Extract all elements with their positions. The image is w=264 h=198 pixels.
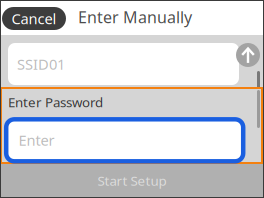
staticText: Enter Password <box>8 93 103 111</box>
staticText: Enter Manually <box>78 6 192 28</box>
button[interactable]: Enter Manually <box>78 8 198 26</box>
staticText: SSID01 <box>17 54 65 74</box>
staticText: Cancel <box>11 9 56 28</box>
staticText: Enter <box>18 130 54 150</box>
button[interactable]: Enter <box>4 117 244 163</box>
button[interactable]: SSID01 <box>8 43 239 85</box>
button[interactable]: Start Setup <box>0 163 264 198</box>
button[interactable]: Scroll to top <box>236 43 260 67</box>
staticText: Start Setup <box>97 172 166 189</box>
button[interactable]: Cancel <box>2 7 66 30</box>
